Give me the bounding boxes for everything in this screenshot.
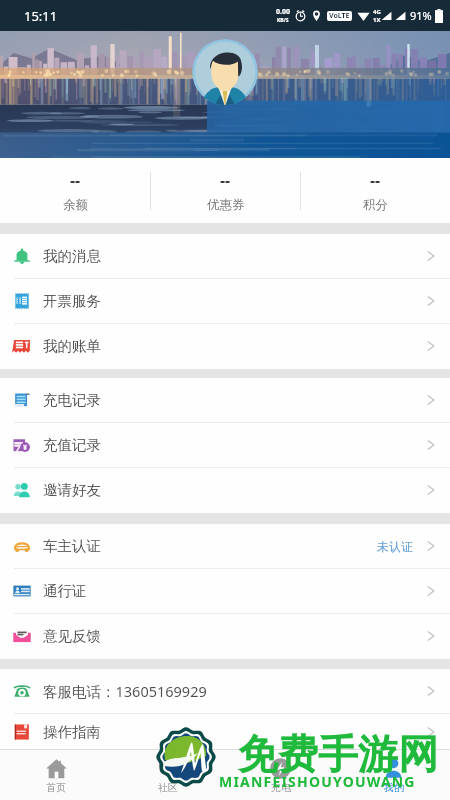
staticText: 意见反馈 [43,627,101,645]
button[interactable]: -- [151,158,300,223]
staticText: 4G [373,8,381,16]
staticText: -- [70,169,81,191]
staticText: 车主认证 [43,537,101,555]
staticText: -- [220,169,231,191]
staticText: 15:11 [24,7,58,25]
staticText: 我的消息 [43,247,101,265]
button[interactable]: 我的消息 [0,234,450,279]
staticText: 充电 [271,781,291,794]
staticText: VoLTE [329,11,350,21]
button[interactable]: 邀请好友 [0,468,450,513]
button[interactable]: 开票服务 [0,279,450,324]
staticText: 免费手游网 [238,729,438,779]
button[interactable]: 充值记录 [0,423,450,468]
button[interactable]: 社区 [112,750,224,800]
button[interactable]: 车主认证 [0,524,450,569]
staticText: 91% [410,8,432,23]
button[interactable]: 首页 [0,750,112,800]
staticText: 首页 [46,781,66,794]
staticText: KB/S [277,17,289,24]
staticText: 我的账单 [43,337,101,355]
staticText: 通行证 [43,582,87,600]
staticText: 邀请好友 [43,481,101,499]
staticText: 1X [373,16,381,24]
button[interactable]: 充电记录 [0,378,450,423]
staticText: 0.00 [276,7,290,17]
staticText: 客服电话：13605169929 [43,681,207,701]
staticText: 我的 [384,781,404,794]
button[interactable]: 通行证 [0,569,450,614]
staticText: 充电记录 [43,391,101,409]
staticText: 开票服务 [43,292,101,310]
staticText: MIANFEISHOUYOUWANG [219,772,416,791]
staticText: 操作指南 [43,723,101,741]
button[interactable]: 充电 [224,750,337,800]
button[interactable]: -- [301,158,450,223]
staticText: 积分 [363,197,388,213]
button[interactable]: 我的账单 [0,324,450,369]
staticText: 余额 [63,197,88,213]
button[interactable]: Profile avatar [192,39,258,105]
button[interactable]: 操作指南 [0,714,450,749]
staticText: -- [370,169,381,191]
button[interactable]: 意见反馈 [0,614,450,659]
staticText: 社区 [158,781,178,794]
staticText: 优惠券 [207,197,245,213]
staticText: 未认证 [377,539,413,554]
button[interactable]: 我的 [337,750,450,800]
staticText: 充值记录 [43,436,101,454]
button[interactable]: -- [0,158,150,223]
button[interactable]: 客服电话：13605169929 [0,669,450,714]
